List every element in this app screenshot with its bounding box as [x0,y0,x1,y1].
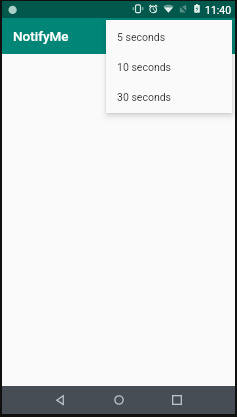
staticText: 11:40 [205,4,232,16]
button[interactable]: Recent apps [170,393,184,407]
button[interactable]: 5 seconds [106,22,232,52]
button[interactable]: Home [112,393,126,407]
staticText: 10 seconds [117,61,172,73]
staticText: 30 seconds [117,91,172,103]
staticText: NotifyMe [13,28,69,44]
button[interactable]: Back [54,393,68,407]
button[interactable]: 30 seconds [106,82,232,111]
staticText: 5 seconds [117,31,166,43]
button[interactable]: 10 seconds [106,52,232,82]
